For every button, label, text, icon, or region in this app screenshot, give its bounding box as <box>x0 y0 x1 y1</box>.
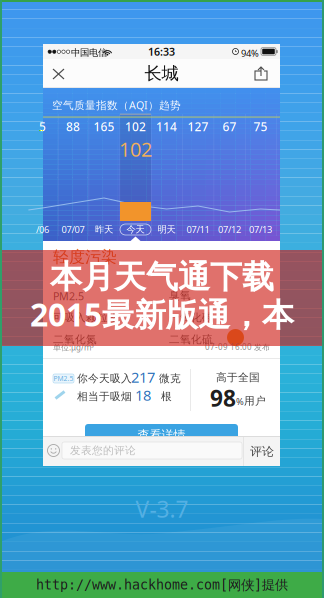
staticText: PM2.5 <box>53 374 73 383</box>
staticText: 98 <box>210 383 236 413</box>
staticText: 本月天气通下载 <box>50 257 274 297</box>
staticText: 07/13 <box>249 223 272 236</box>
staticText: http://www.hackhome.com[网侠]提供 <box>36 577 288 593</box>
staticText: 今天 <box>126 224 144 235</box>
staticText: 217 <box>131 367 155 387</box>
staticText: 二氧化硫 <box>169 333 213 346</box>
staticText: 88 <box>66 118 80 134</box>
staticText: 94% <box>241 47 259 59</box>
staticText: 07-09 16:00 发布 <box>205 342 270 352</box>
staticText: 发表您的评论 <box>70 444 136 457</box>
staticText: 16:33 <box>148 44 175 59</box>
staticText: 可吸入颗粒物 <box>53 311 119 324</box>
staticText: 二氧化氮 <box>53 333 97 346</box>
staticText: 长城 <box>144 63 178 84</box>
staticText: 102 <box>119 136 152 162</box>
staticText: 你今天吸入 <box>77 372 132 385</box>
staticText: 165 <box>93 118 114 134</box>
staticText: 07/12 <box>218 223 241 236</box>
staticText: 用户 <box>244 394 266 407</box>
staticText: 127 <box>187 118 208 134</box>
staticText: 一氧化碳 <box>169 311 213 324</box>
button[interactable]: Close <box>43 59 73 88</box>
staticText: 高于全国 <box>216 371 260 384</box>
staticText: 昨天 <box>95 224 113 235</box>
staticText: 5 <box>39 118 46 134</box>
staticText: 18 <box>135 385 151 405</box>
staticText: 空气质量指数（AQI）趋势 <box>52 98 181 112</box>
staticText: 2015最新版通，本 <box>30 293 294 335</box>
staticText: 明天 <box>157 224 175 235</box>
button[interactable]: Share <box>246 59 276 88</box>
staticText: 114 <box>156 118 177 134</box>
staticText: PM2.5 <box>53 289 84 303</box>
staticText: 中国电信 <box>71 47 107 58</box>
staticText: 75 <box>253 118 267 134</box>
staticText: % <box>236 395 244 408</box>
staticText: 轻度污染 <box>53 247 117 267</box>
staticText: 102 <box>125 118 146 134</box>
button[interactable]: 查看详情 <box>85 424 238 446</box>
staticText: 微克 <box>159 372 181 385</box>
staticText: 07/07 <box>61 223 84 236</box>
staticText: V-3.7 <box>135 494 188 524</box>
staticText: /06 <box>36 223 49 236</box>
button[interactable]: 评论 <box>244 437 280 466</box>
staticText: 67 <box>222 118 236 134</box>
staticText: 07/11 <box>186 223 209 236</box>
staticText: 相当于吸烟 <box>77 390 132 403</box>
staticText: 根 <box>161 390 172 403</box>
staticText: 查看详情 <box>137 428 185 442</box>
staticText: 臭氧 <box>169 289 191 302</box>
staticText: 单位:μg/m³ <box>53 342 94 353</box>
staticText: 评论 <box>250 444 274 459</box>
